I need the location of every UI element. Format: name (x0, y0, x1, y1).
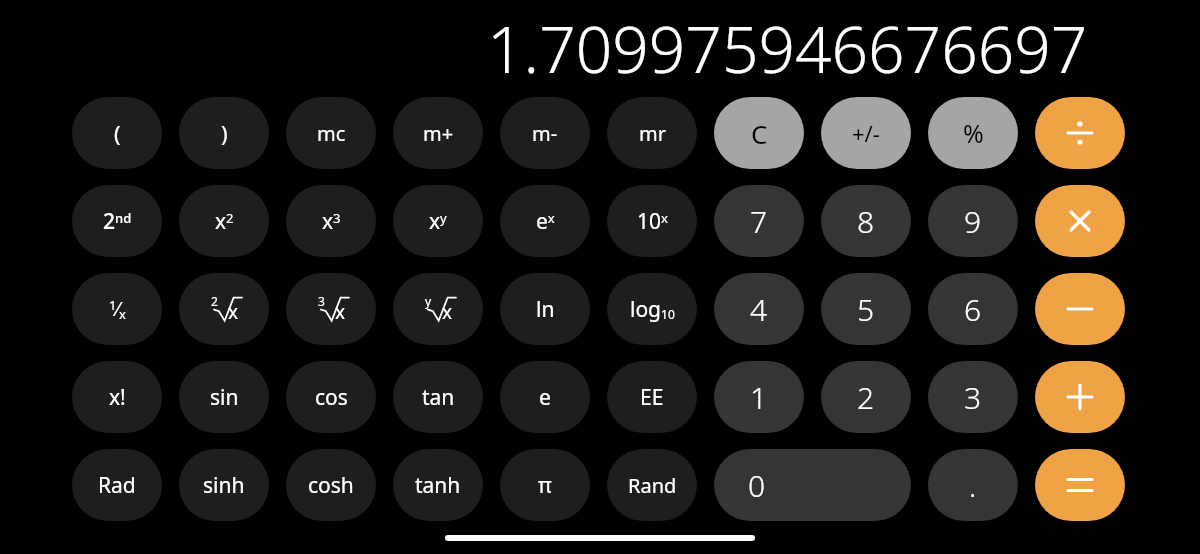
staticText: tanh (415, 471, 461, 500)
staticText: ex (536, 207, 555, 236)
button[interactable]: xy (393, 185, 483, 257)
staticText: 10x (637, 207, 668, 236)
staticText: x (228, 299, 239, 325)
staticText: x3 (322, 207, 341, 236)
staticText: xy (429, 207, 447, 236)
button[interactable]: m+ (393, 97, 483, 169)
button[interactable]: log10 (607, 273, 697, 345)
button[interactable]: x! (72, 361, 162, 433)
staticText: ) (221, 118, 228, 148)
button[interactable]: e (500, 361, 590, 433)
staticText: C (751, 116, 768, 151)
button[interactable]: mr (607, 97, 697, 169)
button[interactable]: 0 (714, 449, 911, 521)
staticText: 6 (964, 289, 982, 330)
button[interactable]: Equals (1035, 449, 1125, 521)
staticText: mr (639, 120, 666, 147)
button[interactable]: 2 (821, 361, 911, 433)
staticText: +/- (852, 118, 880, 148)
staticText: m- (532, 120, 558, 147)
staticText: . (969, 465, 977, 506)
button[interactable]: m- (500, 97, 590, 169)
staticText: 3 (964, 377, 982, 418)
button[interactable]: sinh (179, 449, 269, 521)
staticText: x (442, 299, 453, 325)
button[interactable]: π (500, 449, 590, 521)
staticText: x (335, 299, 346, 325)
staticText: 1.709975946676697 (487, 5, 1088, 92)
staticText: 5 (857, 289, 875, 330)
button[interactable]: tan (393, 361, 483, 433)
button[interactable]: 8 (821, 185, 911, 257)
staticText: 3 (318, 293, 325, 309)
button[interactable]: x2 (179, 185, 269, 257)
button[interactable]: 2 (179, 273, 269, 345)
staticText: 2 (857, 377, 875, 418)
button[interactable]: % (928, 97, 1018, 169)
button[interactable]: sin (179, 361, 269, 433)
button[interactable]: +/- (821, 97, 911, 169)
staticText: e (539, 383, 551, 412)
button[interactable]: 10x (607, 185, 697, 257)
button[interactable]: 6 (928, 273, 1018, 345)
button[interactable]: C (714, 97, 804, 169)
staticText: π (538, 471, 552, 500)
button[interactable]: cos (286, 361, 376, 433)
button[interactable]: 9 (928, 185, 1018, 257)
button[interactable]: . (928, 449, 1018, 521)
button[interactable]: cosh (286, 449, 376, 521)
staticText: 0 (748, 465, 766, 506)
button[interactable]: 5 (821, 273, 911, 345)
staticText: log10 (630, 295, 675, 324)
button[interactable]: mc (286, 97, 376, 169)
button[interactable]: y (393, 273, 483, 345)
button[interactable]: 1⁄x (72, 273, 162, 345)
button[interactable]: Plus (1035, 361, 1125, 433)
staticText: sin (210, 383, 239, 412)
button[interactable]: Minus (1035, 273, 1125, 345)
staticText: x2 (215, 207, 234, 236)
button[interactable]: 3 (928, 361, 1018, 433)
button[interactable]: ex (500, 185, 590, 257)
staticText: y (425, 293, 432, 309)
button[interactable]: 3 (286, 273, 376, 345)
button[interactable]: 1 (714, 361, 804, 433)
staticText: m+ (423, 120, 454, 147)
staticText: 9 (964, 201, 982, 242)
staticText: sinh (203, 471, 245, 500)
staticText: 4 (750, 289, 768, 330)
button[interactable]: ln (500, 273, 590, 345)
staticText: 1⁄x (109, 296, 126, 323)
button[interactable]: ( (72, 97, 162, 169)
staticText: mc (317, 120, 346, 147)
button[interactable]: 4 (714, 273, 804, 345)
staticText: 1 (750, 377, 768, 418)
staticText: x! (109, 383, 126, 412)
button[interactable]: Divide (1035, 97, 1125, 169)
button[interactable]: 2nd (72, 185, 162, 257)
button[interactable]: 7 (714, 185, 804, 257)
staticText: Rand (628, 472, 677, 499)
staticText: 8 (857, 201, 875, 242)
staticText: cos (315, 383, 348, 412)
button[interactable]: tanh (393, 449, 483, 521)
button[interactable]: Rand (607, 449, 697, 521)
staticText: tan (422, 383, 455, 412)
button[interactable]: Multiply (1035, 185, 1125, 257)
staticText: ( (114, 118, 121, 148)
staticText: % (963, 116, 984, 150)
button[interactable]: ) (179, 97, 269, 169)
staticText: 2nd (103, 207, 132, 236)
staticText: Rad (98, 471, 136, 500)
button[interactable]: EE (607, 361, 697, 433)
staticText: ln (536, 295, 555, 324)
staticText: EE (640, 383, 664, 412)
button[interactable]: Rad (72, 449, 162, 521)
button[interactable]: x3 (286, 185, 376, 257)
staticText: cosh (308, 471, 354, 500)
staticText: 2 (211, 293, 218, 309)
staticText: 7 (750, 201, 768, 242)
